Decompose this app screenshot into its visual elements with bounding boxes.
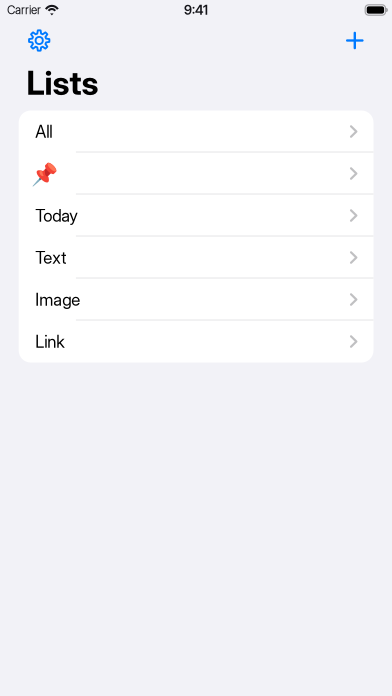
staticText: All (35, 121, 52, 142)
button[interactable]: Today (19, 194, 373, 236)
button[interactable]: All (19, 110, 373, 152)
staticText: Text (35, 247, 66, 268)
button[interactable]: Text (19, 236, 373, 278)
staticText: Image (35, 289, 80, 310)
button[interactable]: Link (19, 320, 373, 362)
staticText: Today (35, 205, 78, 226)
staticText: Link (35, 331, 65, 352)
staticText: Carrier (7, 3, 41, 17)
button[interactable]: Settings (17, 25, 61, 55)
button[interactable]: New list (333, 25, 377, 55)
button[interactable]: 📌 (19, 152, 373, 194)
button[interactable]: Image (19, 278, 373, 320)
staticText: Lists (26, 63, 98, 102)
staticText: 📌 (31, 161, 58, 187)
staticText: 9:41 (184, 2, 208, 18)
